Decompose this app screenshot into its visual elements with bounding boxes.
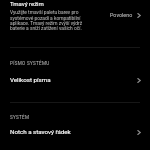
button[interactable]: Notch a stavový řádek bbox=[0, 121, 150, 141]
staticText: Využijte tmavší paletu barev pro systémo… bbox=[10, 10, 94, 31]
button[interactable]: Velikost písma bbox=[0, 69, 150, 89]
other: Font size bbox=[137, 78, 141, 83]
other: Notch and status bar bbox=[137, 130, 141, 135]
staticText: Velikost písma bbox=[10, 76, 137, 83]
staticText: Tmavý režim bbox=[10, 0, 44, 7]
staticText: SYSTÉM bbox=[10, 115, 30, 120]
staticText: Povoleno bbox=[110, 12, 133, 18]
staticText: Notch a stavový řádek bbox=[10, 128, 137, 135]
button[interactable]: Tmavý režim bbox=[0, 0, 150, 40]
staticText: PÍSMO SYSTÉMU bbox=[10, 61, 50, 66]
